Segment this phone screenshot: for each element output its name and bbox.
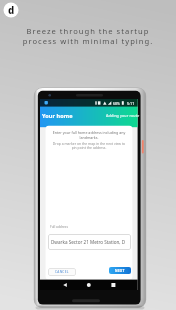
- staticText: Adding your route: [106, 113, 140, 118]
- staticText: Enter your full home address including a…: [46, 130, 132, 310]
- staticText: CANCEL: [55, 270, 69, 274]
- button[interactable]: [82, 280, 96, 290]
- staticText: 68%: [113, 101, 120, 106]
- button[interactable]: [58, 280, 72, 290]
- staticText: d: [8, 4, 15, 17]
- staticText: Dwarka Sector 21 Metro Station, D: [51, 239, 126, 245]
- staticText: 5:11: [127, 101, 135, 106]
- button[interactable]: CANCEL: [48, 268, 76, 276]
- staticText: Full address: [50, 225, 68, 229]
- staticText: Your home: [42, 112, 73, 119]
- staticText: Breeze through the startup process with …: [8, 26, 168, 310]
- staticText: Drop a marker on the map in the next vie…: [46, 141, 132, 310]
- button[interactable]: [106, 280, 120, 290]
- button[interactable]: NEXT: [109, 267, 131, 274]
- staticText: NEXT: [115, 269, 125, 273]
- button[interactable]: Dwarka Sector 21 Metro Station, D: [48, 234, 131, 250]
